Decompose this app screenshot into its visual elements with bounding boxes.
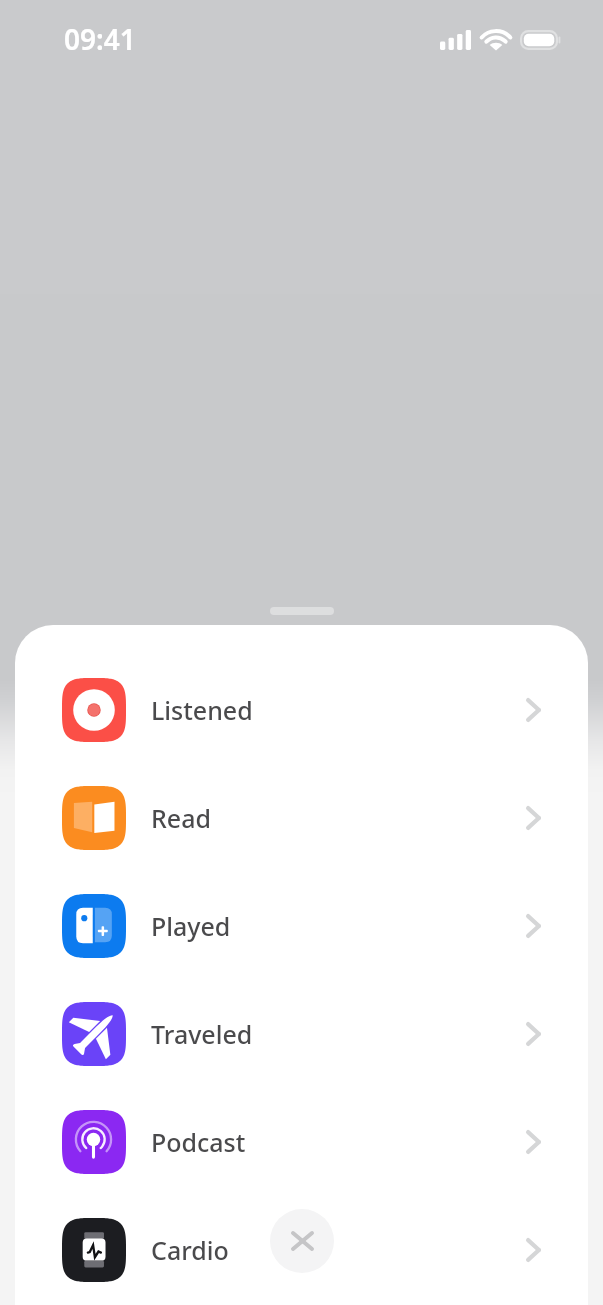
staticText: Cardio: [151, 1233, 229, 1267]
staticText: Played: [151, 909, 231, 943]
staticText: Listened: [151, 693, 253, 727]
button[interactable]: Read: [15, 764, 588, 872]
button[interactable]: Listened: [15, 656, 588, 764]
button[interactable]: Close: [270, 1209, 334, 1273]
staticText: Traveled: [151, 1017, 253, 1051]
button[interactable]: Traveled: [15, 980, 588, 1088]
button[interactable]: Played: [15, 872, 588, 980]
staticText: 09:41: [64, 20, 136, 58]
button[interactable]: Podcast: [15, 1088, 588, 1196]
staticText: Read: [151, 801, 211, 835]
button[interactable]: Cardio: [15, 1196, 588, 1304]
staticText: Podcast: [151, 1125, 246, 1159]
